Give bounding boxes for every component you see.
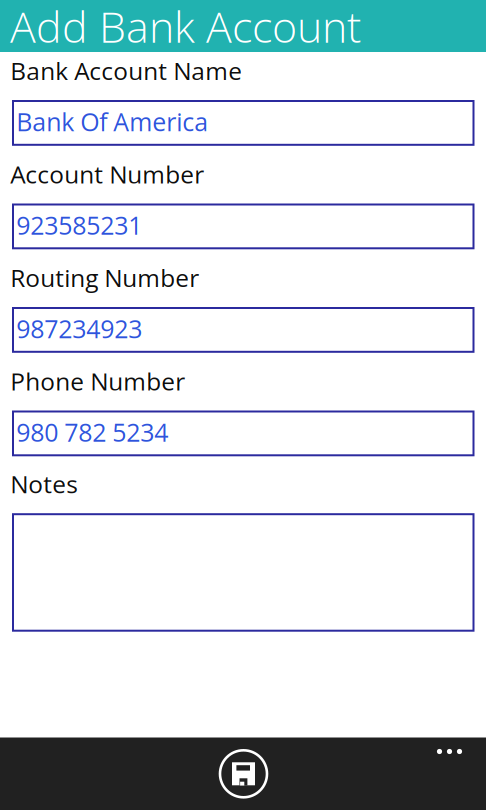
staticText: Phone Number [10, 364, 185, 398]
staticText: 987234923 [16, 311, 142, 345]
button[interactable]: 980 782 5234 [12, 410, 474, 456]
staticText: Notes [10, 467, 78, 500]
button[interactable]: Save [214, 745, 272, 803]
staticText: Account Number [10, 157, 204, 191]
staticText: 923585231 [16, 208, 142, 242]
staticText: Bank Account Name [10, 54, 242, 87]
staticText: 980 782 5234 [16, 415, 168, 449]
button[interactable]: 987234923 [12, 307, 474, 353]
button[interactable]: 923585231 [12, 203, 474, 249]
staticText: Bank Of America [16, 104, 208, 138]
button[interactable]: Bank Of America [12, 100, 474, 146]
staticText: Routing Number [10, 261, 199, 294]
button[interactable]: More options [418, 737, 480, 771]
staticText: Add Bank Account [10, 0, 361, 55]
button[interactable] [12, 513, 474, 632]
